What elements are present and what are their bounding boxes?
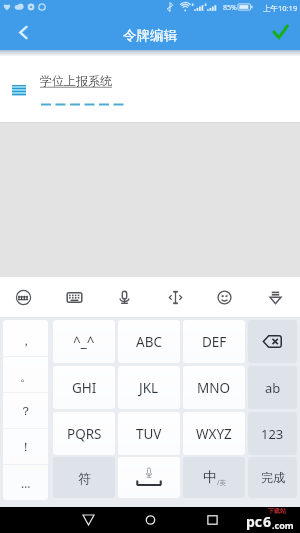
button[interactable]: 。: [3, 357, 48, 392]
staticText: 下载站: [268, 507, 286, 515]
staticText: JKL: [139, 379, 159, 397]
staticText: ！: [20, 439, 32, 454]
button[interactable]: ，: [3, 320, 48, 356]
button[interactable]: WXYZ: [183, 412, 245, 455]
button[interactable]: Confirm: [260, 15, 300, 50]
staticText: /英: [217, 478, 226, 487]
staticText: 85%: [223, 3, 237, 13]
staticText: ab: [265, 379, 281, 397]
staticText: ABC: [136, 333, 162, 351]
staticText: GHI: [72, 379, 97, 397]
button[interactable]: 完成: [248, 457, 297, 498]
button[interactable]: …: [3, 465, 48, 500]
button[interactable]: Back: [0, 15, 46, 50]
button[interactable]: MNO: [183, 366, 245, 409]
button[interactable]: ！: [3, 429, 48, 464]
button[interactable]: ab: [248, 366, 297, 409]
button[interactable]: PQRS: [53, 412, 115, 455]
staticText: pc: [246, 512, 263, 531]
button[interactable]: Space: [118, 457, 180, 498]
staticText: .com: [272, 519, 294, 531]
button[interactable]: Back: [74, 507, 102, 533]
button[interactable]: 123: [248, 412, 297, 455]
staticText: 6: [263, 512, 272, 531]
staticText: 123: [261, 425, 284, 443]
button[interactable]: Backspace: [248, 320, 297, 363]
button[interactable]: Keyboard layout: [56, 277, 92, 318]
button[interactable]: Input method settings: [5, 277, 41, 318]
button[interactable]: Emoji: [206, 277, 242, 318]
button[interactable]: Voice input: [106, 277, 142, 318]
button[interactable]: TUV: [118, 412, 180, 455]
staticText: MNO: [197, 379, 231, 397]
button[interactable]: 中: [183, 457, 245, 498]
staticText: 令牌编辑: [123, 27, 177, 44]
staticText: 符: [78, 470, 91, 486]
button[interactable]: Move cursor: [157, 277, 193, 318]
button[interactable]: 符: [53, 457, 115, 498]
staticText: 中: [203, 469, 217, 487]
button[interactable]: Hide keyboard: [257, 277, 293, 318]
staticText: 学位上报系统: [40, 73, 112, 88]
button[interactable]: JKL: [118, 366, 180, 409]
staticText: PQRS: [67, 425, 102, 443]
staticText: DEF: [202, 333, 227, 351]
button[interactable]: Recents: [198, 507, 226, 533]
button[interactable]: ？: [3, 393, 48, 428]
button[interactable]: GHI: [53, 366, 115, 409]
staticText: 完成: [261, 470, 285, 485]
staticText: ^_^: [73, 333, 95, 351]
button[interactable]: ^_^: [53, 320, 115, 363]
button[interactable]: Home: [136, 507, 164, 533]
staticText: ？: [20, 403, 32, 418]
staticText: 上午10:19: [263, 3, 298, 13]
staticText: ，: [20, 333, 32, 348]
button[interactable]: DEF: [183, 320, 245, 363]
staticText: WXYZ: [196, 425, 232, 443]
staticText: …: [21, 475, 31, 491]
staticText: TUV: [136, 425, 162, 443]
staticText: 。: [20, 369, 32, 384]
button[interactable]: ABC: [118, 320, 180, 363]
